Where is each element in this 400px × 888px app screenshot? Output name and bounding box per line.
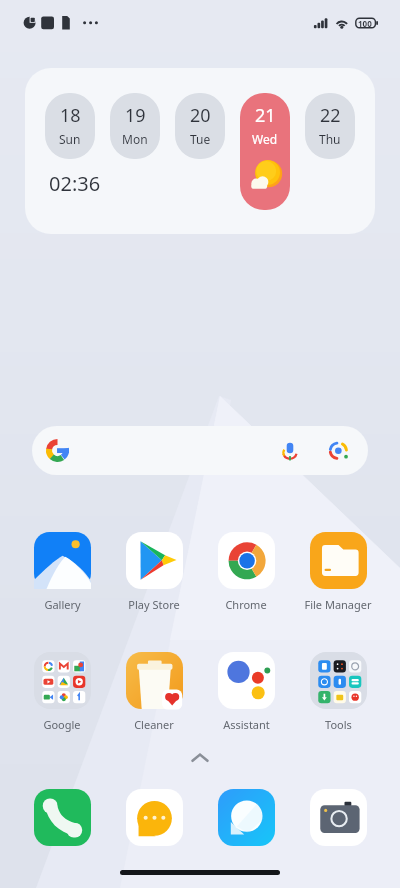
button[interactable]: 19 — [110, 93, 160, 159]
button[interactable]: 21 — [240, 93, 290, 210]
button[interactable]: 18 — [25, 68, 375, 234]
staticText: 18 — [60, 103, 81, 128]
button[interactable]: Browser — [204, 789, 288, 846]
staticText: File Manager — [304, 597, 372, 612]
staticText: Mon — [122, 131, 148, 147]
staticText: Cleaner — [134, 717, 174, 732]
staticText: Chrome — [225, 597, 267, 612]
other: Open app drawer — [189, 748, 211, 770]
staticText: Wed — [252, 131, 278, 147]
staticText: Google — [43, 717, 81, 732]
button[interactable]: Phone — [20, 789, 104, 846]
button[interactable]: Google Lens — [322, 434, 355, 467]
staticText: Gallery — [44, 597, 81, 612]
button[interactable]: 20 — [175, 93, 225, 159]
button[interactable]: File Manager — [296, 532, 380, 612]
button[interactable]: Camera — [296, 789, 380, 846]
staticText: 02:36 — [49, 170, 101, 197]
staticText: Tue — [190, 131, 211, 147]
button[interactable]: Messages — [112, 789, 196, 846]
button[interactable]: Google — [20, 652, 104, 732]
staticText: Sun — [59, 131, 81, 147]
button[interactable]: Tools — [296, 652, 380, 732]
button[interactable]: Gallery — [20, 532, 104, 612]
staticText: 20 — [190, 103, 211, 128]
button[interactable]: 18 — [45, 93, 95, 159]
button[interactable]: 22 — [305, 93, 355, 159]
staticText: Play Store — [128, 597, 180, 612]
button[interactable]: Chrome — [204, 532, 288, 612]
staticText: Thu — [319, 131, 341, 147]
button[interactable]: Voice search — [273, 434, 306, 467]
staticText: Assistant — [223, 717, 270, 732]
staticText: Tools — [325, 717, 352, 732]
staticText: 21 — [255, 103, 276, 128]
button[interactable]: Play Store — [112, 532, 196, 612]
button[interactable]: Voice search — [32, 426, 368, 475]
staticText: 100 — [358, 18, 372, 29]
staticText: 19 — [125, 103, 146, 128]
button[interactable]: Cleaner — [112, 652, 196, 732]
button[interactable]: Assistant — [204, 652, 288, 732]
staticText: 22 — [320, 103, 341, 128]
